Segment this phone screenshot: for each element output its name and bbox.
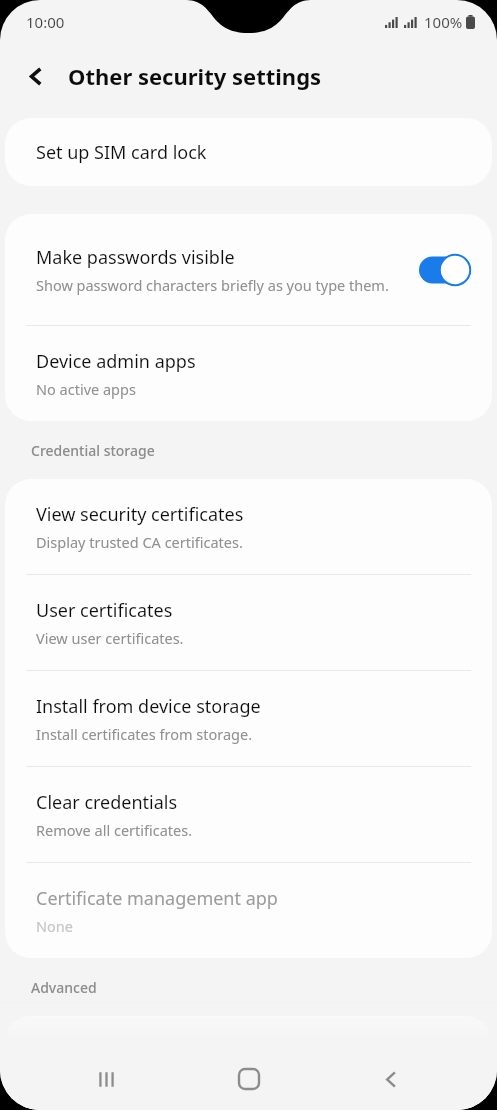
button[interactable]: Recents: [70, 1048, 142, 1110]
button[interactable]: Back: [18, 58, 54, 94]
staticText: Remove all certificates.: [36, 820, 193, 840]
button[interactable]: Clear credentials: [5, 767, 492, 862]
button[interactable]: Back: [0, 44, 497, 108]
staticText: None: [36, 916, 73, 936]
button[interactable]: Back: [355, 1048, 427, 1110]
button[interactable]: View security certificates: [5, 479, 492, 574]
staticText: Set up overlooked trust agents: [36, 1068, 246, 1088]
staticText: Make passwords visible: [36, 245, 235, 270]
staticText: Device admin apps: [36, 349, 196, 374]
staticText: Set up SIM card lock: [36, 140, 207, 165]
staticText: No active apps: [36, 379, 136, 399]
staticText: Other security settings: [68, 61, 322, 91]
button[interactable]: Home: [213, 1048, 285, 1110]
staticText: Clear credentials: [36, 790, 178, 815]
staticText: 10:00: [26, 12, 65, 32]
staticText: Advanced: [31, 978, 97, 997]
button[interactable]: Device admin apps: [5, 326, 492, 421]
staticText: 100%: [424, 12, 463, 32]
staticText: Show password characters briefly as you …: [36, 275, 389, 295]
staticText: Certificate management app: [36, 886, 278, 911]
staticText: View security certificates: [36, 502, 244, 527]
staticText: View user certificates.: [36, 628, 184, 648]
staticText: User certificates: [36, 598, 173, 623]
button[interactable]: Make passwords visible: [5, 214, 492, 325]
staticText: Display trusted CA certificates.: [36, 532, 243, 552]
staticText: Credential storage: [31, 441, 155, 460]
button[interactable]: User certificates: [5, 575, 492, 670]
button[interactable]: Trust agents: [5, 1016, 492, 1110]
button[interactable]: Make passwords visible: [419, 254, 471, 286]
staticText: Install from device storage: [36, 694, 261, 719]
button[interactable]: Install from device storage: [5, 671, 492, 766]
button[interactable]: Set up SIM card lock: [5, 118, 492, 186]
button[interactable]: Certificate management app: [5, 863, 492, 958]
staticText: Install certificates from storage.: [36, 724, 253, 744]
